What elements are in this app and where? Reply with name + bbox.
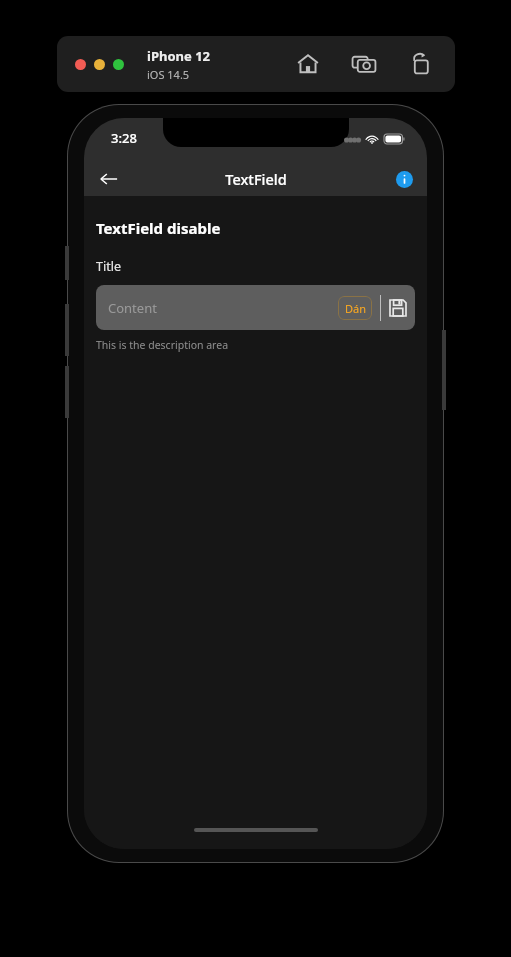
button[interactable] — [94, 59, 105, 70]
staticText: 3:28 — [111, 129, 137, 147]
staticText: Content — [108, 299, 338, 317]
button[interactable]: Content — [96, 285, 415, 330]
button[interactable]: Home — [295, 51, 321, 77]
button[interactable]: Info — [391, 166, 417, 192]
button[interactable]: Back — [92, 162, 126, 196]
staticText: TextField disable — [96, 218, 221, 238]
button[interactable] — [75, 59, 86, 70]
button[interactable]: Screenshot — [351, 51, 377, 77]
button[interactable]: Save — [388, 298, 408, 318]
staticText: Dán — [345, 301, 366, 316]
button[interactable]: Rotate — [407, 51, 433, 77]
staticText: TextField — [225, 169, 287, 189]
button[interactable]: Dán — [338, 296, 372, 320]
staticText: iOS 14.5 — [147, 67, 190, 82]
button[interactable] — [113, 59, 124, 70]
staticText: This is the description area — [96, 338, 229, 352]
staticText: iPhone 12 — [147, 47, 210, 65]
staticText: Title — [96, 258, 121, 275]
